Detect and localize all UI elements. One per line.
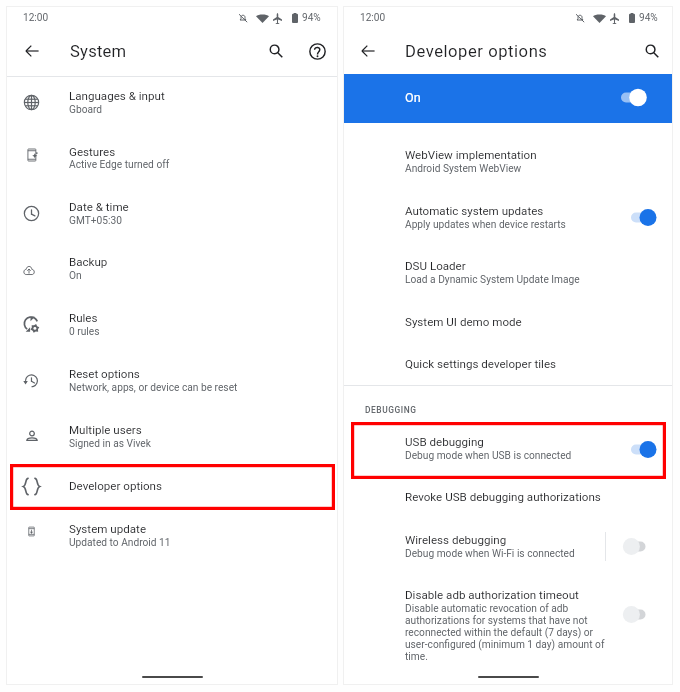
staticText: Android System WebView — [405, 163, 522, 175]
button[interactable] — [344, 422, 672, 477]
staticText: Multiple users — [69, 423, 142, 437]
button[interactable] — [7, 298, 337, 352]
button[interactable]: Help — [299, 33, 335, 69]
staticText: WebView implementation — [405, 148, 537, 162]
staticText: Gboard — [69, 104, 103, 116]
staticText: System update — [69, 522, 147, 536]
button[interactable] — [344, 587, 672, 642]
staticText: USB debugging — [405, 435, 484, 449]
button[interactable] — [344, 74, 672, 123]
button[interactable] — [344, 343, 672, 385]
staticText: Updated to Android 11 — [69, 537, 171, 549]
button[interactable]: Back — [14, 33, 50, 69]
button[interactable]: Search — [634, 33, 670, 69]
staticText: DSU Loader — [405, 259, 466, 273]
staticText: Signed in as Vivek — [69, 438, 151, 450]
staticText: On — [405, 90, 421, 105]
staticText: Apply updates when device restarts — [405, 219, 566, 231]
staticText: Load a Dynamic System Update Image — [405, 274, 580, 286]
button[interactable]: Toggle Disable adb authorization timeout — [628, 600, 668, 629]
staticText: 12:00 — [23, 12, 49, 24]
staticText: 0 rules — [69, 326, 100, 338]
button[interactable] — [344, 134, 672, 189]
staticText: Languages & input — [69, 89, 165, 103]
staticText: Debug mode when Wi-Fi is connected — [405, 548, 575, 560]
staticText: Quick settings developer tiles — [405, 357, 557, 371]
staticText: Developer options — [69, 479, 162, 493]
button[interactable] — [344, 301, 672, 343]
staticText: DEBUGGING — [365, 405, 417, 415]
staticText: Revoke USB debugging authorizations — [405, 490, 601, 504]
button[interactable] — [344, 190, 672, 245]
button[interactable] — [7, 76, 337, 130]
button[interactable] — [7, 509, 337, 563]
button[interactable] — [344, 476, 672, 518]
staticText: Date & time — [69, 200, 129, 214]
staticText: GMT+05:30 — [69, 215, 122, 227]
staticText: Network, apps, or device can be reset — [69, 382, 238, 394]
staticText: Gestures — [69, 145, 116, 159]
button[interactable]: Back — [350, 33, 386, 69]
button[interactable] — [7, 131, 337, 185]
button[interactable] — [7, 242, 337, 296]
staticText: Reset options — [69, 367, 140, 381]
button[interactable] — [7, 459, 337, 513]
staticText: Disable automatic revocation of adb auth… — [405, 603, 605, 663]
staticText: Developer options — [405, 42, 548, 61]
staticText: 12:00 — [360, 12, 386, 24]
button[interactable] — [344, 245, 672, 300]
staticText: System — [70, 42, 127, 61]
staticText: On — [69, 270, 82, 282]
staticText: 94% — [639, 12, 658, 24]
button[interactable] — [7, 187, 337, 241]
staticText: Debug mode when USB is connected — [405, 450, 572, 462]
button[interactable]: Toggle Automatic system updates — [628, 203, 668, 232]
staticText: Active Edge turned off — [69, 159, 170, 171]
button[interactable]: Toggle Wireless debugging — [628, 532, 668, 561]
staticText: Disable adb authorization timeout — [405, 588, 579, 602]
button[interactable]: Developer options on — [618, 83, 658, 112]
button[interactable]: Toggle USB debugging — [628, 435, 668, 464]
staticText: 94% — [302, 12, 321, 24]
staticText: Wireless debugging — [405, 533, 507, 547]
button[interactable]: Search — [258, 33, 294, 69]
staticText: Automatic system updates — [405, 204, 544, 218]
staticText: Backup — [69, 255, 108, 269]
staticText: Rules — [69, 311, 98, 325]
button[interactable] — [344, 519, 672, 574]
button[interactable] — [7, 410, 337, 464]
staticText: System UI demo mode — [405, 315, 522, 329]
button[interactable] — [7, 354, 337, 408]
